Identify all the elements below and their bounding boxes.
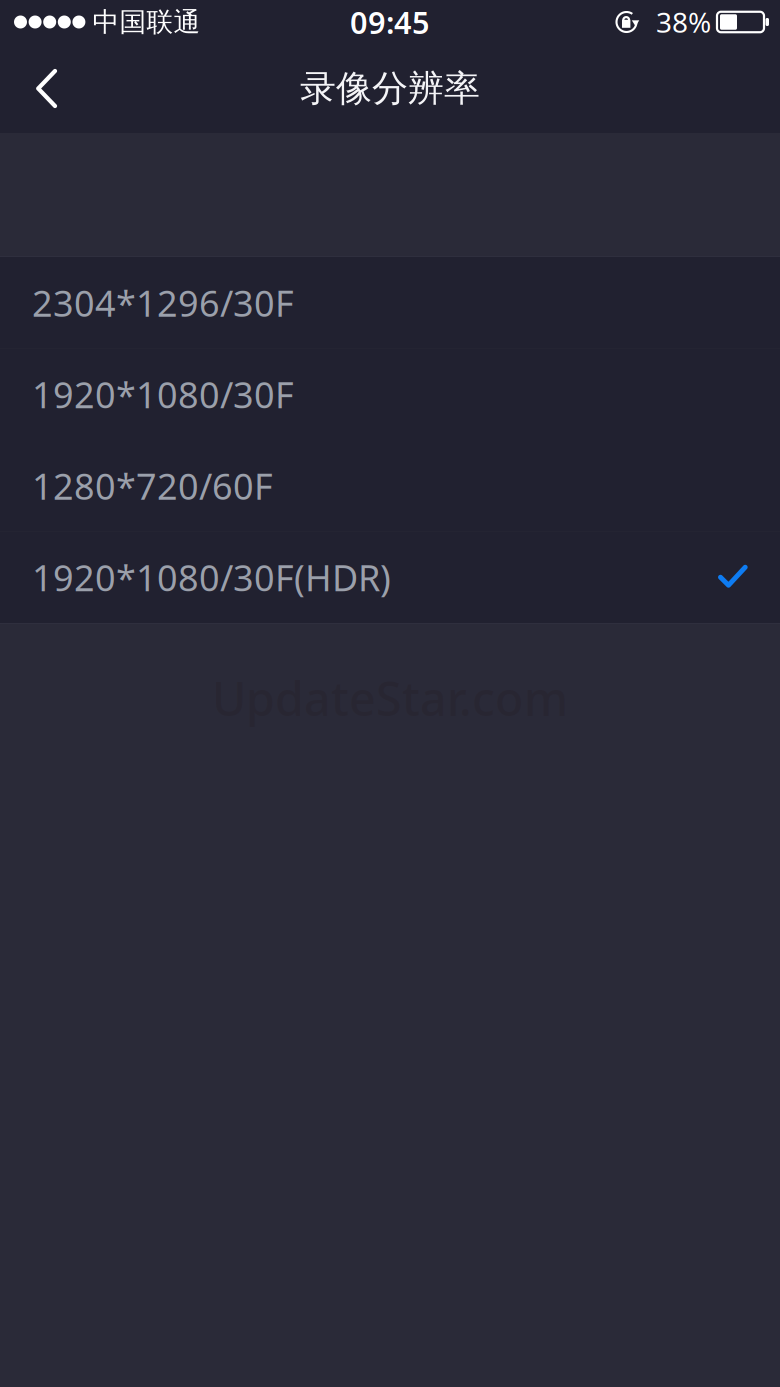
staticText: 1920*1080/30F xyxy=(32,370,294,418)
staticText: 2304*1296/30F xyxy=(32,279,294,327)
button[interactable]: Back xyxy=(0,44,94,133)
staticText: 1920*1080/30F(HDR) xyxy=(32,553,391,601)
button[interactable]: 1920*1080/30F(HDR) xyxy=(0,531,780,623)
staticText: 38% xyxy=(656,3,711,41)
staticText: 录像分辨率 xyxy=(300,66,480,111)
button[interactable]: 1280*720/60F xyxy=(0,440,780,531)
button[interactable]: 2304*1296/30F xyxy=(0,257,780,348)
staticText: 中国联通 xyxy=(92,6,200,38)
staticText: 1280*720/60F xyxy=(32,462,273,510)
staticText: 09:45 xyxy=(350,2,430,42)
button[interactable]: 1920*1080/30F xyxy=(0,348,780,440)
